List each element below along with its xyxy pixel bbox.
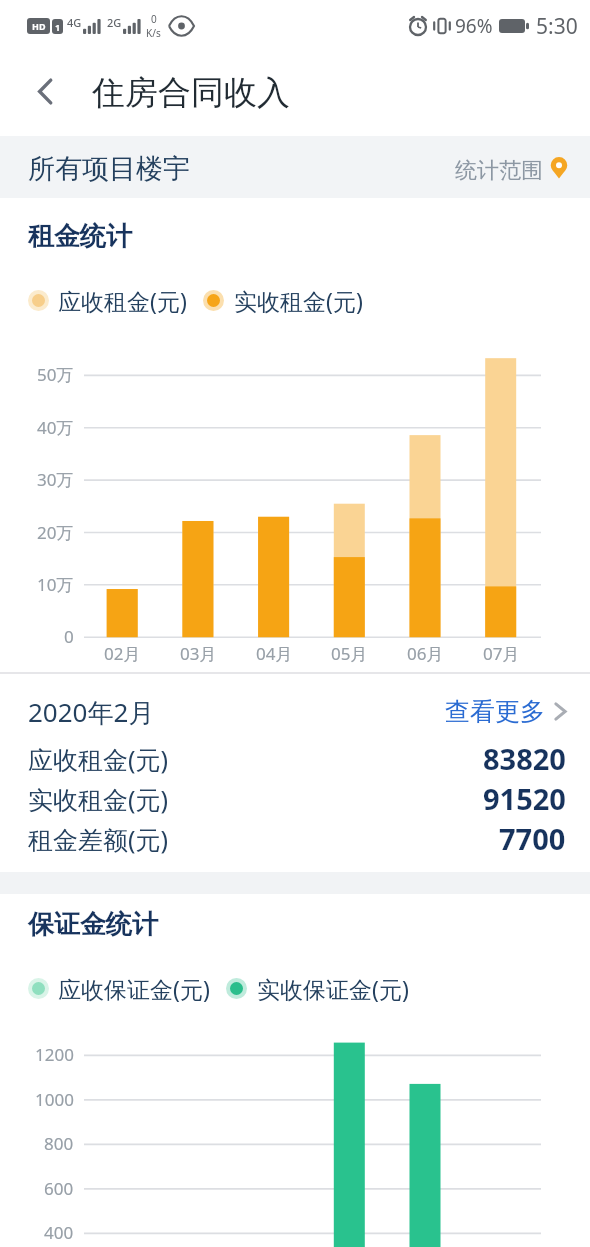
staticText: 04月: [256, 642, 293, 665]
staticText: 91520: [483, 779, 566, 818]
staticText: 租金差额(元): [28, 822, 169, 856]
staticText: 保证金统计: [28, 908, 158, 941]
staticText: 1200: [35, 1043, 74, 1066]
staticText: 4G: [67, 15, 82, 30]
staticText: 40万: [37, 416, 74, 439]
button[interactable]: [36, 78, 54, 105]
staticText: 07月: [483, 642, 520, 665]
button[interactable]: 所有项目楼宇: [28, 136, 568, 198]
staticText: 7700: [499, 819, 566, 858]
staticText: 查看更多: [445, 696, 545, 727]
staticText: 1000: [35, 1088, 74, 1111]
staticText: 0: [64, 625, 74, 648]
staticText: 83820: [483, 739, 566, 778]
staticText: 实收租金(元): [234, 285, 363, 316]
staticText: 20万: [37, 521, 74, 544]
staticText: 10万: [37, 573, 74, 596]
staticText: 600: [44, 1177, 74, 1200]
staticText: 1: [55, 21, 61, 33]
staticText: 实收租金(元): [28, 782, 169, 816]
staticText: 06月: [407, 642, 444, 665]
staticText: 所有项目楼宇: [28, 152, 190, 186]
staticText: 05月: [331, 642, 368, 665]
staticText: 50万: [37, 363, 74, 386]
staticText: 800: [44, 1132, 74, 1155]
staticText: 应收保证金(元): [58, 973, 210, 1004]
button[interactable]: 查看更多: [0, 694, 567, 728]
staticText: K/s: [146, 26, 161, 40]
staticText: 400: [44, 1221, 74, 1244]
staticText: 统计范围: [455, 157, 543, 185]
staticText: 02月: [104, 642, 141, 665]
staticText: 03月: [180, 642, 217, 665]
staticText: 0: [151, 12, 157, 26]
staticText: 租金统计: [28, 220, 132, 253]
staticText: 2020年2月: [28, 694, 155, 730]
staticText: 应收租金(元): [28, 742, 169, 776]
staticText: 住房合同收入: [92, 72, 290, 114]
staticText: 5:30: [536, 12, 578, 41]
staticText: 30万: [37, 468, 74, 491]
staticText: 2G: [107, 15, 122, 30]
staticText: 96%: [455, 13, 493, 39]
staticText: HD: [32, 20, 46, 32]
staticText: 应收租金(元): [58, 285, 187, 316]
staticText: 实收保证金(元): [257, 973, 409, 1004]
